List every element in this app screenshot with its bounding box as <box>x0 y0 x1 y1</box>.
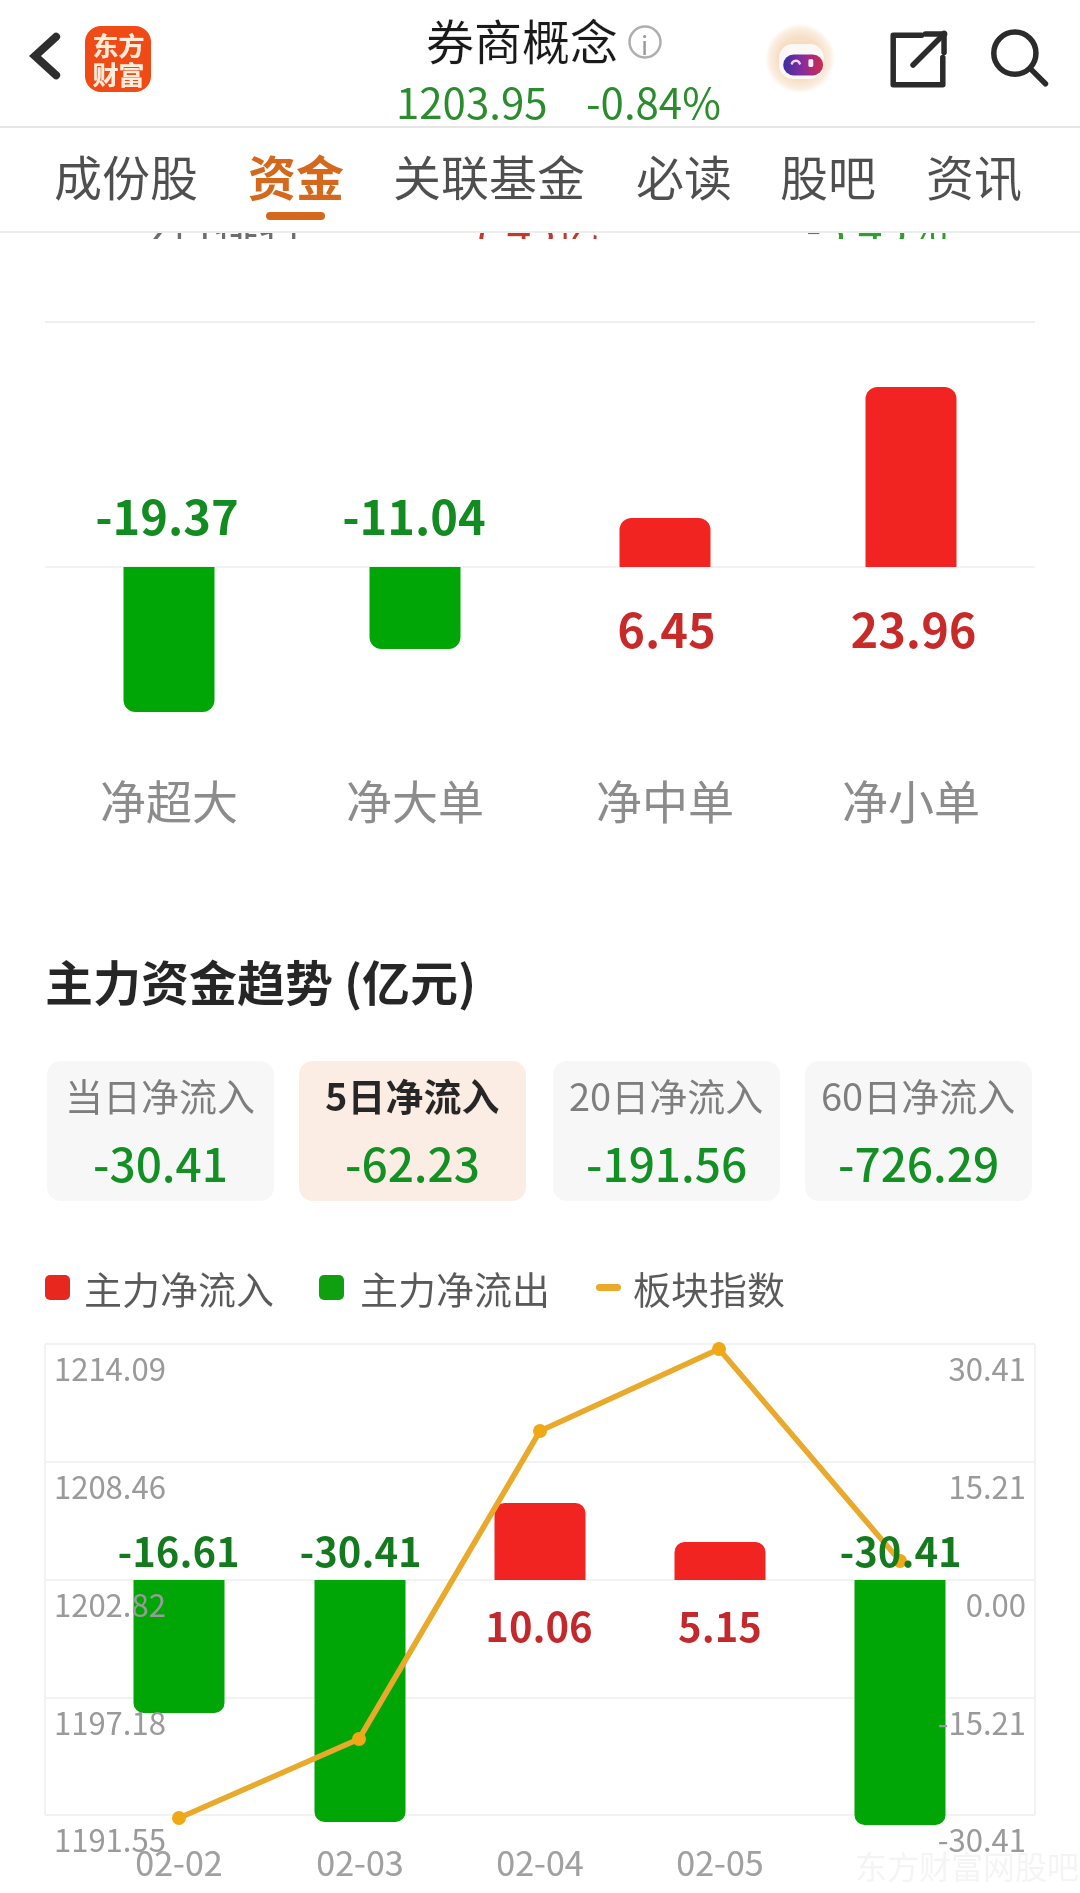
button[interactable]: 成份股 <box>26 140 226 220</box>
staticText: 5日净流入 <box>325 1067 500 1122</box>
staticText: 0.00 <box>965 1581 1026 1626</box>
staticText: 净超大 <box>100 766 238 833</box>
staticText: 资讯 <box>926 140 1023 210</box>
staticText: -15.21 <box>937 1699 1026 1744</box>
staticText: -19.37 <box>95 480 239 548</box>
staticText: 板块指数 <box>633 1260 786 1315</box>
staticText: -30.41 <box>839 1521 962 1579</box>
staticText: -3.45% <box>806 194 948 239</box>
staticText: 东方 财富 <box>92 26 145 92</box>
button[interactable]: AI assistant <box>762 22 838 98</box>
staticText: 1202.82 <box>54 1581 166 1626</box>
staticText: 1203.95 <box>396 70 548 131</box>
staticText: 23.96 <box>850 593 977 661</box>
staticText: 20日净流入 <box>569 1067 764 1122</box>
staticText: 主力净流出 <box>360 1260 551 1315</box>
staticText: 30.41 <box>948 1345 1026 1390</box>
staticText: i <box>641 25 649 59</box>
staticText: 5.15 <box>678 1596 762 1654</box>
staticText: 6.45 <box>617 593 716 661</box>
staticText: 股吧 <box>780 140 877 210</box>
button[interactable]: Back <box>8 18 84 94</box>
staticText: 02-03 <box>316 1837 404 1886</box>
staticText: 主力资金趋势 (亿元) <box>45 945 477 1015</box>
staticText: 主力净流入 <box>84 1260 275 1315</box>
staticText: 02-04 <box>496 1837 584 1886</box>
button[interactable]: 股吧 <box>728 140 928 220</box>
staticText: 净大单 <box>346 766 484 833</box>
staticText: -30.41 <box>937 1816 1026 1861</box>
staticText: 60日净流入 <box>821 1067 1016 1122</box>
staticText: 1208.46 <box>54 1463 166 1508</box>
button[interactable]: 主力净流出 <box>319 1260 551 1315</box>
staticText: 净小单 <box>842 766 980 833</box>
button[interactable]: 必读 <box>584 140 784 220</box>
staticText: 1214.09 <box>54 1345 166 1390</box>
staticText: -30.41 <box>299 1521 422 1579</box>
staticText: 10.06 <box>485 1596 593 1654</box>
button[interactable]: Share <box>878 20 958 100</box>
button[interactable]: 5日净流入 <box>299 1061 526 1201</box>
button[interactable]: 60日净流入 <box>805 1061 1032 1201</box>
staticText: -726.29 <box>838 1129 1000 1196</box>
staticText: -30.41 <box>93 1129 229 1196</box>
button[interactable]: 当日净流入 <box>47 1061 274 1201</box>
button[interactable]: 资金 <box>196 140 396 220</box>
staticText: 关联基金 <box>393 140 586 210</box>
button[interactable]: Search <box>981 20 1061 100</box>
staticText: 1191.55 <box>54 1816 166 1861</box>
staticText: 7.43亿 <box>470 194 600 239</box>
button[interactable]: 关联基金 <box>389 140 589 220</box>
button[interactable]: Eastmoney <box>85 26 151 92</box>
staticText: 02-05 <box>676 1837 764 1886</box>
staticText: -62.23 <box>345 1129 481 1196</box>
staticText: 净中单 <box>596 766 734 833</box>
staticText: 今日排名 <box>126 194 302 239</box>
staticText: 15.21 <box>948 1463 1026 1508</box>
button[interactable]: 20日净流入 <box>553 1061 780 1201</box>
staticText: 券商概念 <box>426 4 619 74</box>
staticText: -0.84% <box>586 70 721 131</box>
button[interactable]: 主力净流入 <box>45 1260 275 1315</box>
button[interactable]: 板块指数 <box>596 1260 786 1315</box>
staticText: -191.56 <box>586 1129 748 1196</box>
staticText: 东方财富网股吧 <box>855 1842 1080 1888</box>
staticText: 成份股 <box>54 140 199 210</box>
staticText: 资金 <box>248 140 345 210</box>
staticText: 1197.18 <box>54 1699 166 1744</box>
staticText: -11.04 <box>342 480 486 548</box>
staticText: 当日净流入 <box>65 1067 256 1122</box>
button[interactable]: 资讯 <box>874 140 1074 220</box>
staticText: -16.61 <box>117 1521 240 1579</box>
staticText: 02-02 <box>135 1837 223 1886</box>
staticText: 必读 <box>636 140 733 210</box>
